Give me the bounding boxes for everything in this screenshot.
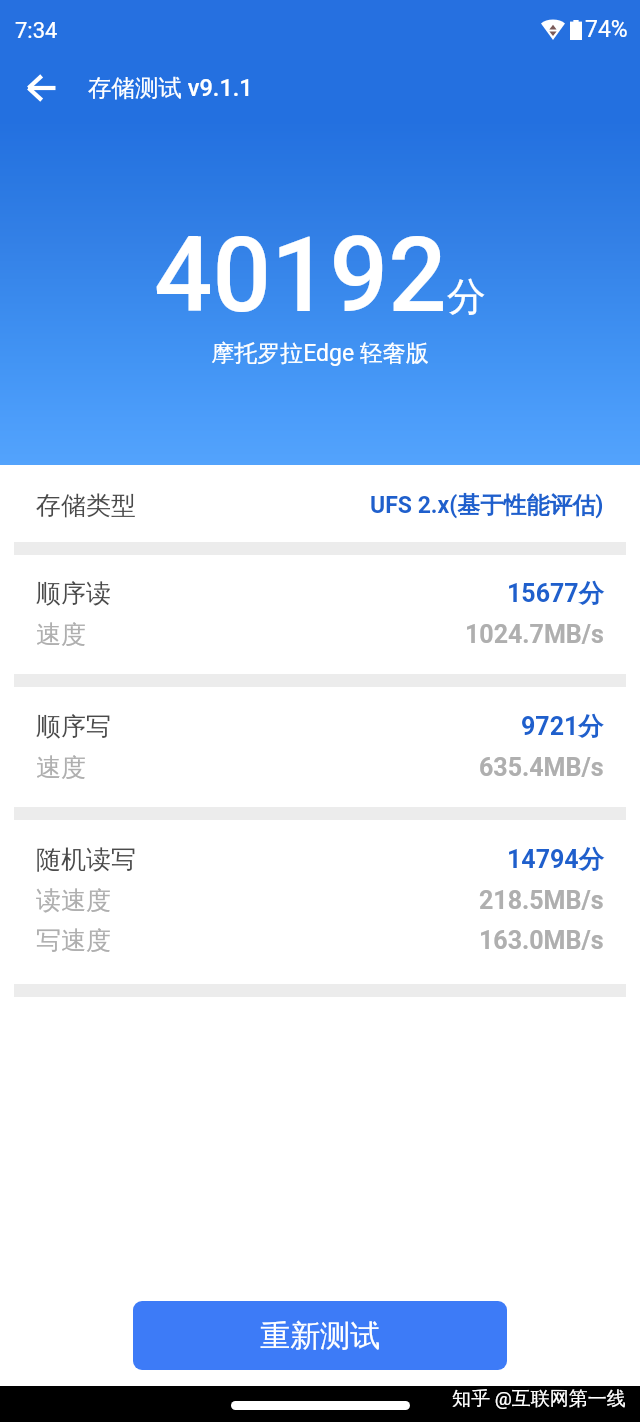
staticText: 存储类型 [36,490,136,521]
button[interactable]: 重新测试 [133,1301,507,1370]
button[interactable]: 存储类型 [0,465,640,542]
staticText: 读速度 [36,885,111,916]
staticText: UFS 2.x(基于性能评估) [370,491,604,520]
button[interactable]: 顺序写 [0,687,640,807]
button[interactable]: Back [16,64,64,112]
staticText: 存储测试 v9.1.1 [88,73,253,103]
staticText: 74% [585,16,628,43]
staticText: 速度 [36,752,86,783]
staticText: 1024.7MB/s [465,620,604,649]
staticText: 顺序读 [36,578,111,609]
staticText: 635.4MB/s [479,753,604,782]
staticText: 15677分 [507,578,604,609]
button[interactable]: 随机读写 [0,820,640,984]
staticText: 7:34 [15,18,58,44]
staticText: 速度 [36,619,86,650]
staticText: 218.5MB/s [479,886,604,915]
staticText: 163.0MB/s [479,926,604,955]
staticText: 摩托罗拉Edge 轻奢版 [0,339,640,368]
staticText: 写速度 [36,925,111,956]
staticText: 顺序写 [36,711,111,742]
button[interactable]: 顺序读 [0,555,640,674]
staticText: 随机读写 [36,844,136,875]
staticText: 14794分 [507,844,604,875]
staticText: 40192 [154,215,447,336]
staticText: 9721分 [521,711,604,742]
staticText: 知乎 @互联网第一线 [452,1387,626,1411]
staticText: 重新测试 [260,1317,380,1355]
staticText: 分 [447,272,486,321]
